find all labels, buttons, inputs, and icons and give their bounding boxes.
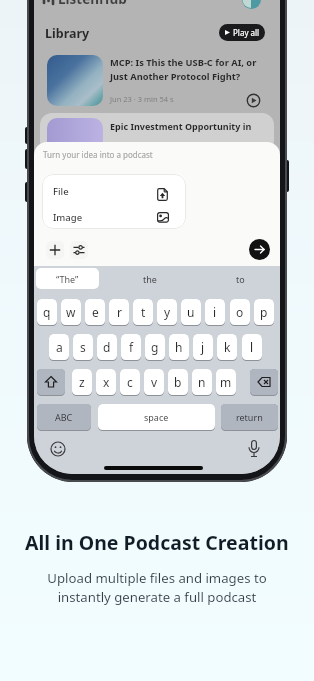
- staticText: ListenHub: [58, 0, 127, 8]
- staticText: f: [129, 339, 134, 355]
- staticText: Play all: [233, 27, 260, 38]
- staticText: u: [187, 304, 195, 320]
- staticText: r: [117, 304, 122, 320]
- staticText: ABC: [55, 411, 73, 423]
- staticText: Jun 23 · 3 min 54 s: [110, 94, 174, 104]
- staticText: i: [213, 304, 217, 320]
- staticText: return: [236, 411, 263, 423]
- staticText: t: [141, 304, 146, 320]
- staticText: n: [198, 374, 206, 390]
- staticText: h: [175, 339, 183, 355]
- staticText: Library: [45, 25, 90, 41]
- staticText: e: [92, 304, 99, 320]
- staticText: g: [151, 339, 159, 355]
- staticText: File: [53, 185, 69, 198]
- staticText: Upload multiple files and images to inst…: [47, 569, 267, 606]
- staticText: j: [201, 339, 205, 355]
- staticText: All in One Podcast Creation: [25, 529, 289, 556]
- staticText: w: [66, 304, 76, 320]
- staticText: o: [236, 304, 244, 320]
- staticText: Epic Investment Opportunity in: [110, 120, 252, 132]
- staticText: z: [79, 374, 85, 390]
- staticText: to: [236, 273, 245, 285]
- staticText: Image: [53, 211, 83, 224]
- staticText: b: [174, 374, 182, 390]
- staticText: the: [143, 273, 157, 285]
- staticText: l: [250, 339, 254, 355]
- staticText: d: [103, 339, 111, 355]
- staticText: p: [260, 304, 268, 320]
- staticText: “The”: [56, 273, 79, 285]
- staticText: k: [224, 339, 231, 355]
- staticText: y: [164, 304, 171, 320]
- staticText: q: [43, 304, 51, 320]
- staticText: m: [220, 374, 232, 390]
- staticText: x: [103, 374, 110, 390]
- staticText: Turn your idea into a podcast: [43, 149, 153, 160]
- staticText: s: [80, 339, 86, 355]
- staticText: c: [127, 374, 133, 390]
- staticText: MCP: Is This the USB-C for AI, or Just A…: [110, 56, 257, 82]
- staticText: space: [144, 411, 169, 423]
- staticText: v: [151, 374, 158, 390]
- staticText: a: [56, 339, 63, 355]
